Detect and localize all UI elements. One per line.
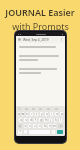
staticText: i [51,112,52,116]
button[interactable]: f [34,118,37,122]
staticText: e [26,112,28,116]
button[interactable]: Backspace [58,124,63,128]
button[interactable]: i [50,112,53,116]
staticText: p [61,112,63,116]
button[interactable]: d [29,118,32,122]
staticText: v [39,124,41,128]
staticText: l [60,118,61,122]
button[interactable]: u [45,112,48,116]
staticText: r [31,112,33,116]
staticText: JOURNAL Easier [5,6,75,18]
button[interactable]: o [55,112,58,116]
staticText: w [22,112,24,116]
button[interactable]: c [33,124,36,128]
staticText: y [41,112,43,116]
staticText: q [18,112,20,116]
other: Menu [18,38,21,41]
staticText: h [45,118,47,122]
staticText: s [25,118,27,122]
staticText: b [44,124,46,128]
staticText: , [25,130,26,134]
staticText: o [56,112,58,116]
staticText: z [24,124,26,128]
staticText: n [49,124,51,128]
button[interactable]: s [24,118,27,122]
other: More options [60,38,63,41]
staticText: f [35,118,36,122]
button[interactable]: k [54,118,57,122]
button[interactable]: q [18,112,20,116]
staticText: j [50,118,51,122]
button[interactable]: Emoji [18,107,21,110]
staticText: u [46,112,48,116]
button[interactable] [19,55,62,63]
button[interactable]: w [22,112,24,116]
staticText: with Prompts [12,20,69,32]
button[interactable]: p [60,112,63,116]
button[interactable]: Menu [16,36,65,43]
button[interactable]: y [40,112,43,116]
button[interactable] [19,68,62,76]
staticText: Wed, Sep 4, 2019 [23,38,49,42]
button[interactable]: n [48,124,51,128]
button[interactable]: ?123 [18,130,22,134]
staticText: x [29,124,31,128]
button[interactable]: r [30,112,33,116]
staticText: t [36,112,37,116]
staticText: d [30,118,32,122]
button[interactable]: l [59,118,62,122]
staticText: c [34,124,36,128]
button[interactable]: g [39,118,42,122]
staticText: ?123 [18,130,22,134]
button[interactable]: t [35,112,38,116]
staticText: g [40,118,42,122]
button[interactable]: m [53,124,56,128]
button[interactable]: , [24,130,27,134]
button[interactable]: Enter [57,130,63,134]
button[interactable]: z [24,124,26,128]
button[interactable]: v [38,124,41,128]
button[interactable]: j [49,118,52,122]
button[interactable]: Shift [18,124,22,128]
button[interactable]: b [43,124,46,128]
button[interactable] [19,46,62,50]
staticText: . [53,130,54,134]
button[interactable]: h [44,118,47,122]
staticText: m [53,124,56,128]
button[interactable]: . [52,130,55,134]
staticText: a [20,118,22,122]
button[interactable]: x [28,124,31,128]
button[interactable]: a [19,118,22,122]
staticText: k [55,118,57,122]
button[interactable]: e [26,112,28,116]
